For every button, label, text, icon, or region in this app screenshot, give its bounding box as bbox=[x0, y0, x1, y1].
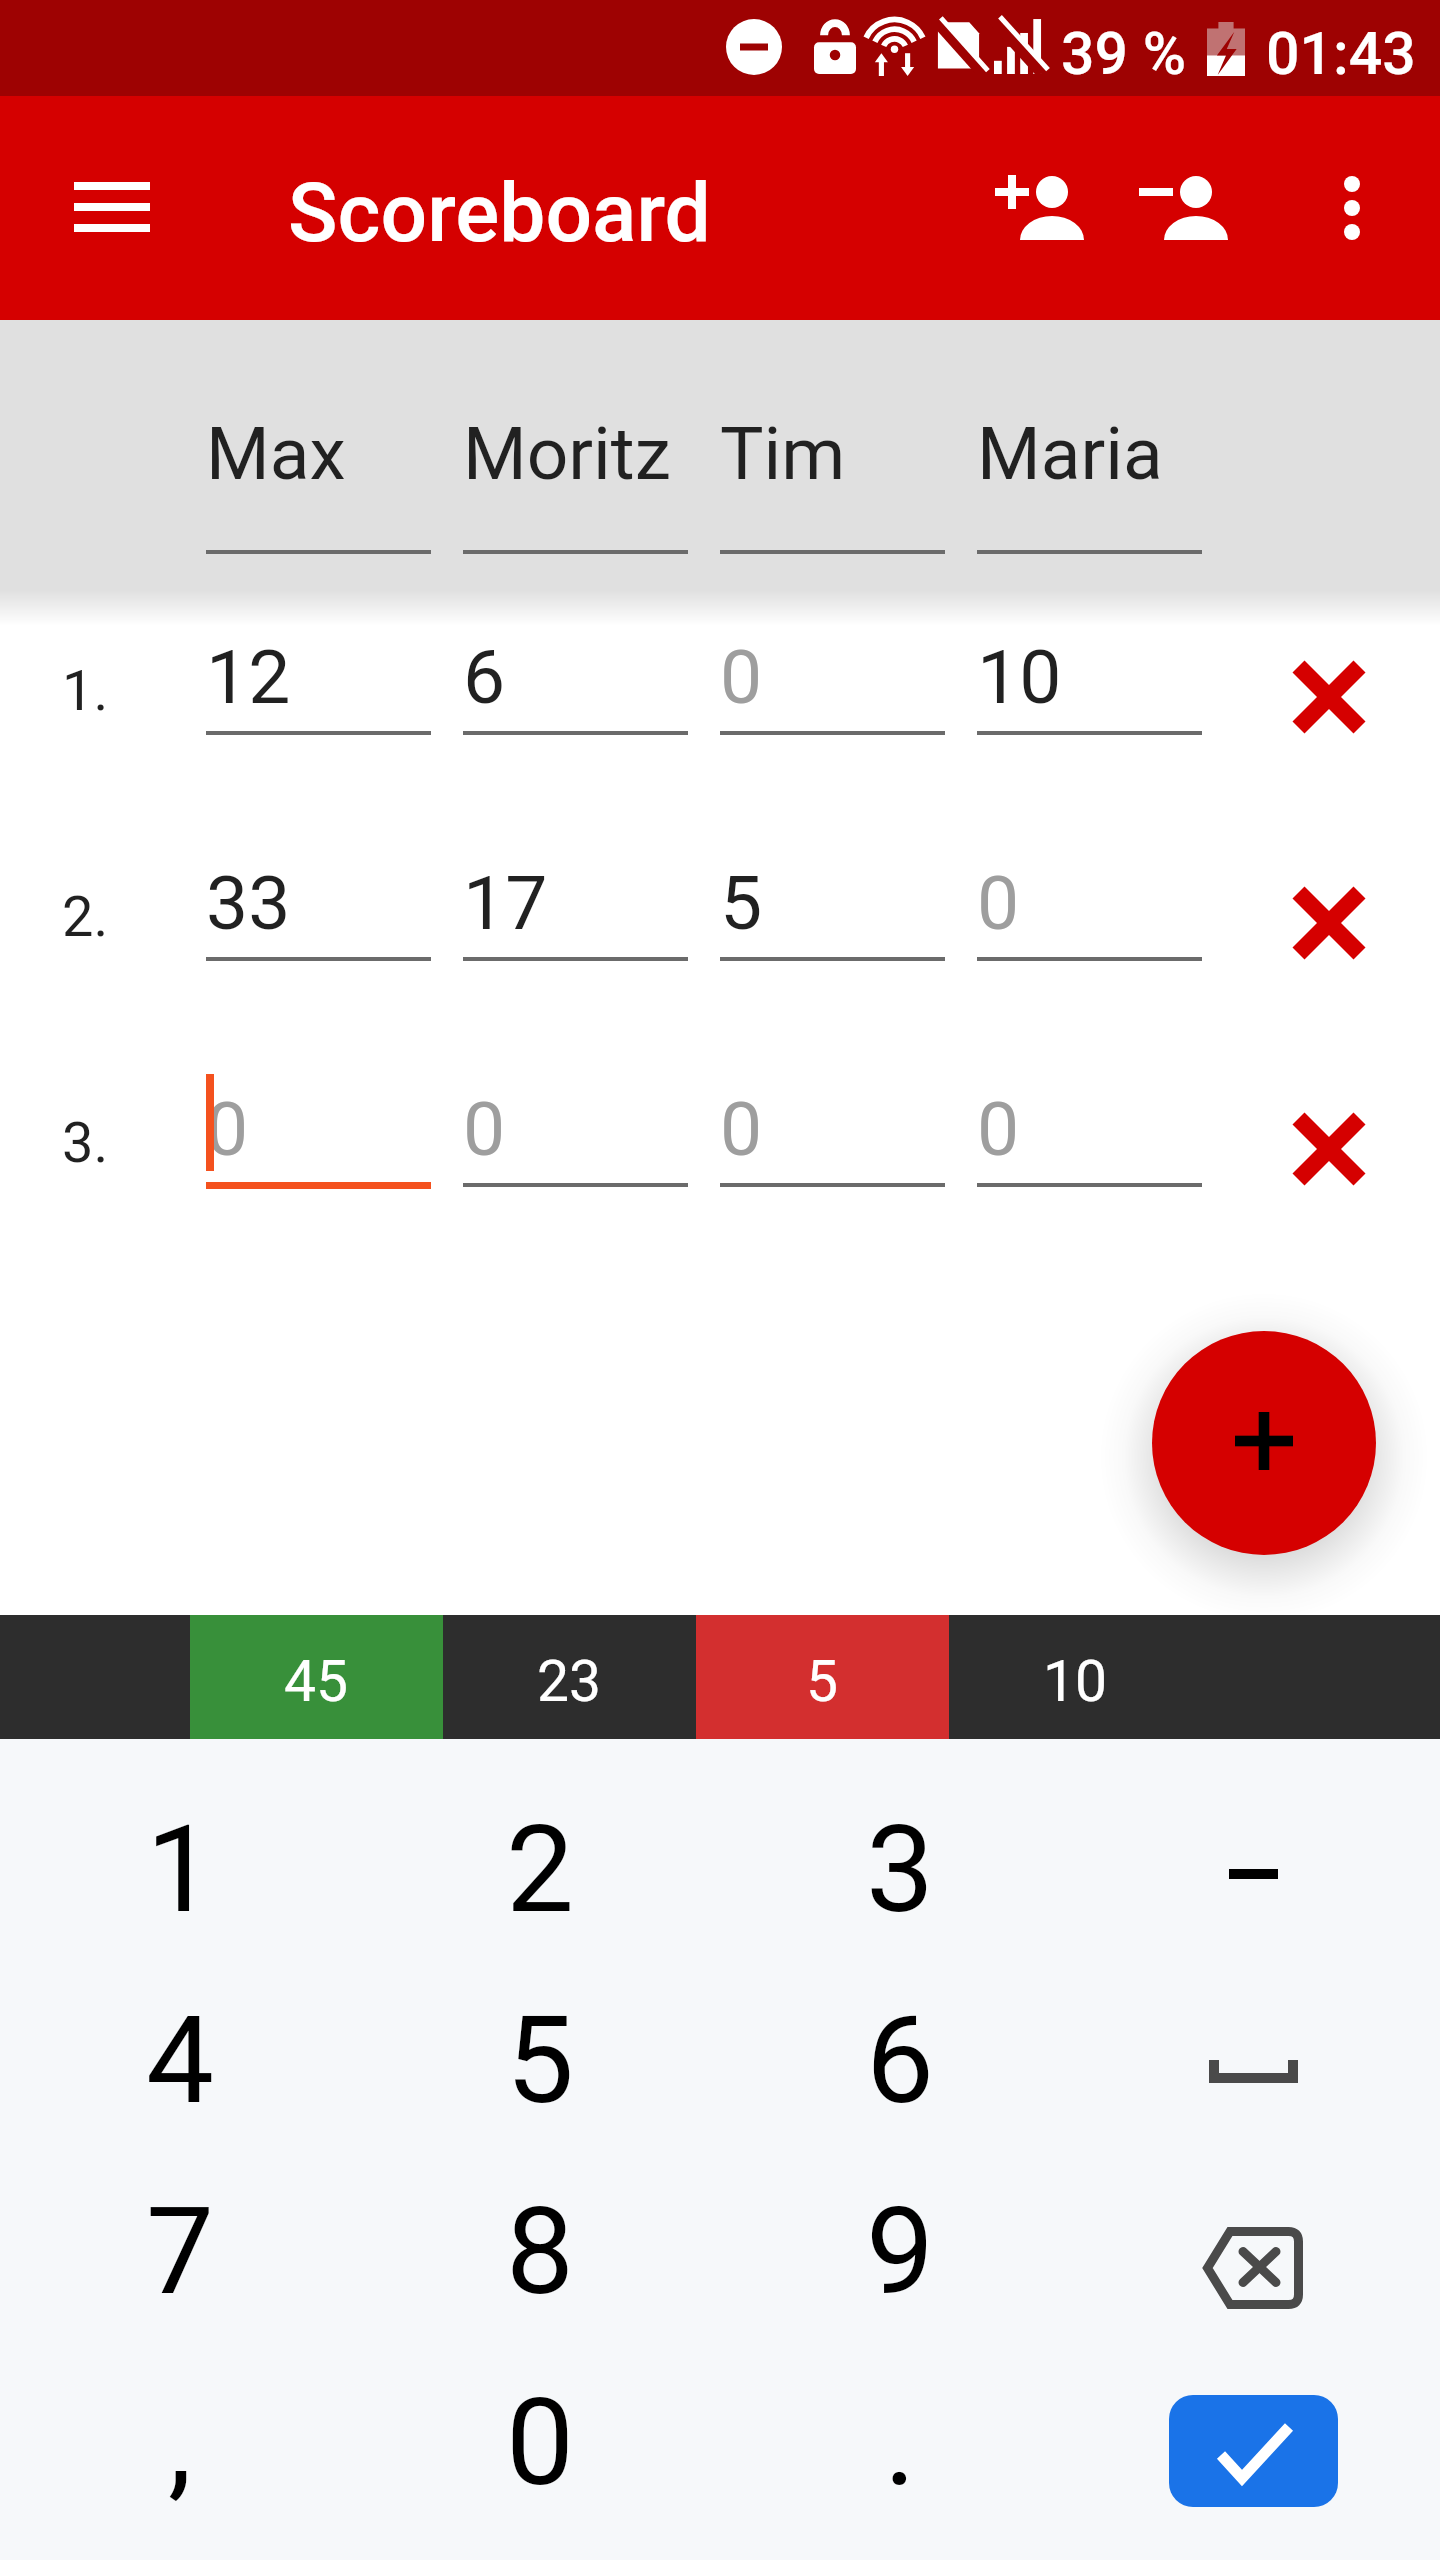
staticText: 23 bbox=[537, 1648, 602, 1715]
staticText: 6 bbox=[866, 1990, 935, 2132]
staticText: Maria bbox=[977, 411, 1163, 497]
staticText: 10 bbox=[977, 633, 1062, 721]
button[interactable]: Delete round 2. bbox=[1218, 851, 1440, 1077]
button[interactable]: Add round bbox=[1152, 1331, 1376, 1555]
staticText: 3 bbox=[866, 1799, 935, 1941]
button[interactable]: Add player bbox=[968, 136, 1112, 280]
button[interactable]: 17 bbox=[447, 851, 704, 1077]
button[interactable]: 9 bbox=[720, 2156, 1080, 2347]
button[interactable]: 2 bbox=[360, 1774, 720, 1965]
button[interactable]: 10 bbox=[949, 1615, 1202, 1739]
button[interactable]: 0 bbox=[360, 2347, 720, 2538]
staticText: , bbox=[168, 2372, 192, 2514]
staticText: 1 bbox=[146, 1799, 215, 1941]
button[interactable]: . bbox=[720, 2347, 1080, 2538]
staticText: 5 bbox=[720, 859, 763, 947]
button[interactable]: 3 bbox=[720, 1774, 1080, 1965]
staticText: Tim bbox=[720, 411, 846, 497]
staticText: 3. bbox=[62, 1110, 109, 1176]
button[interactable]: 5 bbox=[696, 1615, 949, 1739]
button[interactable]: Space bbox=[1080, 1965, 1440, 2156]
button[interactable]: 0 bbox=[704, 1077, 961, 1303]
staticText: 6 bbox=[463, 633, 506, 721]
button[interactable]: 4 bbox=[0, 1965, 360, 2156]
staticText: Max bbox=[206, 411, 346, 497]
staticText: 7 bbox=[146, 2181, 215, 2323]
button[interactable]: 6 bbox=[720, 1965, 1080, 2156]
staticText: 0 bbox=[977, 1085, 1020, 1173]
staticText: 0 bbox=[206, 1085, 249, 1173]
staticText: 4 bbox=[146, 1990, 215, 2132]
staticText: . bbox=[884, 2372, 916, 2514]
staticText: 0 bbox=[720, 633, 763, 721]
button[interactable]: 0 bbox=[704, 625, 961, 851]
staticText: Moritz bbox=[463, 411, 671, 497]
button[interactable]: More options bbox=[1280, 136, 1424, 280]
button[interactable]: Backspace bbox=[1080, 2156, 1440, 2347]
staticText: 39 % bbox=[1061, 19, 1187, 88]
staticText: 01:43 bbox=[1266, 19, 1416, 88]
button[interactable]: Delete round 1. bbox=[1218, 625, 1440, 851]
staticText: 0 bbox=[506, 2372, 575, 2514]
button[interactable]: 45 bbox=[190, 1615, 443, 1739]
staticText: 33 bbox=[206, 859, 291, 947]
staticText: 0 bbox=[977, 859, 1020, 947]
button[interactable]: 23 bbox=[443, 1615, 696, 1739]
staticText: 1. bbox=[62, 658, 109, 724]
staticText: 5 bbox=[806, 1648, 839, 1715]
button[interactable]: 0 bbox=[961, 1077, 1218, 1303]
staticText: 45 bbox=[284, 1648, 349, 1715]
button[interactable]: Remove player bbox=[1112, 136, 1256, 280]
button[interactable]: 0 bbox=[961, 851, 1218, 1077]
button[interactable]: Open navigation drawer bbox=[40, 136, 184, 280]
staticText: 5 bbox=[506, 1990, 575, 2132]
button[interactable]: 10 bbox=[961, 625, 1218, 851]
staticText: 2. bbox=[62, 884, 109, 950]
staticText: 17 bbox=[463, 859, 548, 947]
staticText: 0 bbox=[720, 1085, 763, 1173]
staticText: 10 bbox=[1043, 1648, 1108, 1715]
button[interactable]: 0 bbox=[190, 1077, 447, 1303]
staticText: 0 bbox=[463, 1085, 506, 1173]
button[interactable]: 7 bbox=[0, 2156, 360, 2347]
button[interactable]: 1 bbox=[0, 1774, 360, 1965]
button[interactable]: , bbox=[0, 2347, 360, 2538]
button[interactable]: Minus bbox=[1080, 1774, 1440, 1965]
button[interactable]: 0 bbox=[447, 1077, 704, 1303]
button[interactable]: 8 bbox=[360, 2156, 720, 2347]
staticText: 8 bbox=[506, 2181, 575, 2323]
button[interactable]: Done bbox=[1080, 2347, 1440, 2538]
staticText: 9 bbox=[866, 2181, 935, 2323]
button[interactable]: Delete round 3. bbox=[1218, 1077, 1440, 1303]
button[interactable]: 5 bbox=[360, 1965, 720, 2156]
button[interactable]: 33 bbox=[190, 851, 447, 1077]
button[interactable]: 6 bbox=[447, 625, 704, 851]
staticText: 2 bbox=[506, 1799, 575, 1941]
button[interactable]: 12 bbox=[190, 625, 447, 851]
button[interactable]: 5 bbox=[704, 851, 961, 1077]
staticText: Scoreboard bbox=[288, 165, 711, 261]
staticText: 12 bbox=[206, 633, 291, 721]
